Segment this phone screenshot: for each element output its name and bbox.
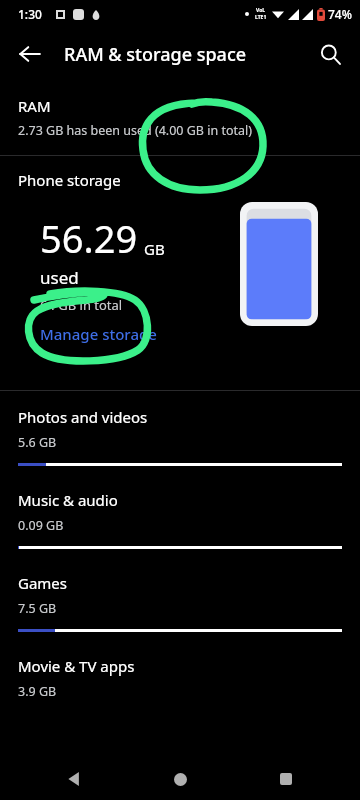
- button[interactable]: Back: [56, 761, 92, 797]
- staticText: 1:30: [18, 6, 42, 22]
- staticText: 7.5 GB: [18, 600, 57, 617]
- staticText: 0.09 GB: [18, 517, 64, 534]
- staticText: used: [40, 266, 79, 289]
- staticText: Photos and videos: [18, 407, 148, 427]
- button[interactable]: Music & audio: [0, 474, 360, 557]
- staticText: 56.29: [40, 212, 138, 264]
- button[interactable]: Games: [0, 557, 360, 640]
- staticText: GB: [144, 239, 165, 259]
- staticText: Movie & TV apps: [18, 656, 135, 676]
- button[interactable]: Manage storage: [40, 324, 157, 344]
- staticText: Manage storage: [40, 324, 157, 344]
- staticText: 64 GB in total: [40, 296, 123, 314]
- staticText: 2.73 GB has been used (4.00 GB in total): [18, 122, 253, 139]
- button[interactable]: Recents: [268, 761, 304, 797]
- staticText: 74%: [328, 6, 352, 22]
- staticText: Games: [18, 573, 68, 593]
- staticText: Music & audio: [18, 490, 118, 510]
- staticText: RAM: [18, 96, 51, 116]
- staticText: 5.6 GB: [18, 434, 57, 451]
- staticText: 3.9 GB: [18, 683, 57, 700]
- button[interactable]: Photos and videos: [0, 391, 360, 474]
- staticText: VoL: [256, 7, 266, 14]
- button[interactable]: Back: [8, 32, 52, 76]
- staticText: Phone storage: [18, 170, 121, 190]
- button[interactable]: RAM: [0, 88, 360, 151]
- button[interactable]: Search: [308, 32, 352, 76]
- staticText: LTE1: [255, 14, 267, 21]
- staticText: RAM & storage space: [64, 42, 247, 67]
- button[interactable]: Home: [162, 761, 198, 797]
- button[interactable]: Movie & TV apps: [0, 640, 360, 708]
